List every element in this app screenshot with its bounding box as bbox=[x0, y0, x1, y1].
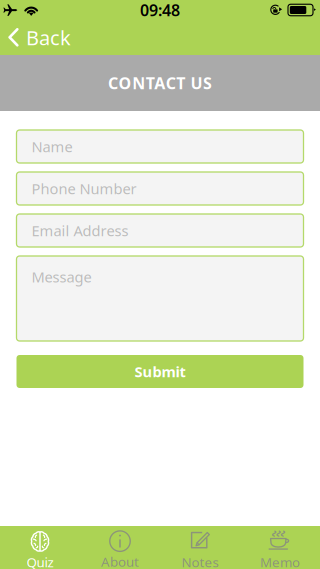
staticText: Name bbox=[31, 137, 72, 156]
button[interactable]: Quiz bbox=[0, 526, 80, 569]
staticText: Back bbox=[26, 24, 71, 51]
staticText: 09:48 bbox=[140, 0, 180, 21]
staticText: Notes bbox=[181, 553, 218, 569]
staticText: Memo bbox=[260, 553, 300, 569]
button[interactable]: Memo bbox=[240, 526, 320, 569]
staticText: Phone Number bbox=[31, 179, 136, 198]
button[interactable]: Submit bbox=[16, 355, 303, 388]
staticText: Message bbox=[31, 267, 91, 286]
staticText: Submit bbox=[134, 362, 185, 381]
button[interactable]: Back bbox=[0, 20, 81, 54]
button[interactable]: About bbox=[80, 526, 160, 569]
staticText: Email Address bbox=[31, 221, 128, 240]
staticText: About bbox=[101, 553, 139, 569]
staticText: Quiz bbox=[26, 553, 53, 569]
button[interactable]: Notes bbox=[160, 526, 240, 569]
staticText: CONTACT US bbox=[108, 72, 212, 94]
